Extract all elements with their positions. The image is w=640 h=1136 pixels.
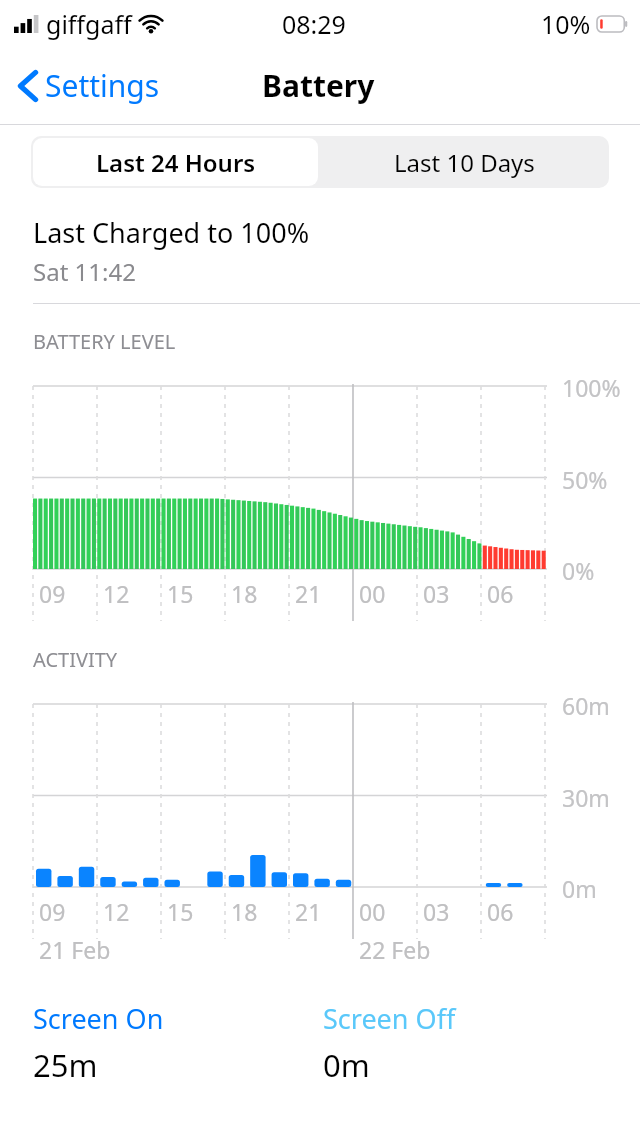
staticText: 15 [167, 896, 194, 927]
staticText: 0m [562, 873, 597, 904]
staticText: 00 [359, 896, 386, 927]
staticText: Battery [262, 65, 375, 106]
staticText: 09 [39, 896, 66, 927]
staticText: Screen Off [323, 1000, 456, 1037]
staticText: 03 [423, 578, 450, 609]
staticText: 18 [231, 578, 258, 609]
staticText: giffgaff [46, 7, 132, 41]
staticText: 0m [323, 1044, 370, 1086]
staticText: 10% [541, 7, 591, 41]
staticText: 50% [562, 464, 608, 495]
staticText: Last 10 Days [394, 146, 535, 179]
staticText: 25m [33, 1044, 98, 1086]
button[interactable]: Last 24 Hours [33, 138, 318, 186]
staticText: 12 [103, 578, 130, 609]
staticText: 21 [295, 578, 322, 609]
staticText: 21 [295, 896, 322, 927]
staticText: Last Charged to 100% [33, 214, 310, 251]
staticText: 100% [562, 372, 621, 403]
staticText: 30m [562, 782, 610, 813]
button[interactable]: Settings [0, 57, 172, 114]
staticText: 06 [487, 896, 514, 927]
staticText: 18 [231, 896, 258, 927]
button[interactable]: Last 10 Days [320, 136, 609, 188]
staticText: 22 Feb [359, 934, 431, 965]
staticText: ACTIVITY [33, 646, 118, 673]
staticText: 03 [423, 896, 450, 927]
staticText: 06 [487, 578, 514, 609]
staticText: Settings [45, 65, 160, 106]
staticText: 08:29 [282, 7, 346, 41]
staticText: Sat 11:42 [33, 255, 136, 288]
staticText: Screen On [33, 1000, 164, 1037]
staticText: 12 [103, 896, 130, 927]
staticText: 21 Feb [39, 934, 111, 965]
staticText: 0% [562, 555, 595, 586]
staticText: Last 24 Hours [96, 146, 256, 179]
staticText: 60m [562, 690, 610, 721]
staticText: 09 [39, 578, 66, 609]
staticText: BATTERY LEVEL [33, 328, 176, 355]
staticText: 00 [359, 578, 386, 609]
staticText: 15 [167, 578, 194, 609]
